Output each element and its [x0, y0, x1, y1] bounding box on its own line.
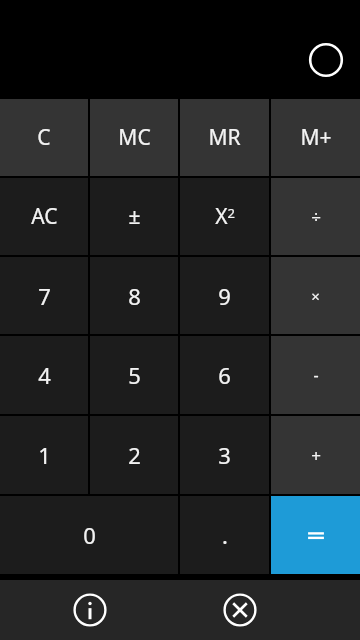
staticText: 9	[218, 281, 231, 311]
staticText: 4	[38, 360, 51, 390]
staticText: M+	[300, 123, 332, 152]
button[interactable]: ±	[90, 178, 178, 255]
staticText: MR	[208, 123, 241, 152]
button[interactable]: M+	[271, 99, 360, 176]
button[interactable]: Close	[180, 580, 300, 640]
button[interactable]: 8	[90, 257, 178, 334]
button[interactable]: 5	[90, 336, 178, 414]
button[interactable]: +	[271, 416, 360, 494]
button[interactable]: X2	[180, 178, 269, 255]
button[interactable]: MR	[180, 99, 269, 176]
button[interactable]: Info	[0, 580, 180, 640]
button[interactable]: 9	[180, 257, 269, 334]
staticText: 3	[218, 440, 231, 470]
button[interactable]: 7	[0, 257, 88, 334]
staticText: 0	[83, 520, 96, 550]
button[interactable]: -	[271, 336, 360, 414]
button[interactable]: C	[0, 99, 88, 176]
staticText: X2	[215, 202, 235, 231]
staticText: +	[311, 444, 321, 467]
staticText: 1	[38, 440, 51, 470]
button[interactable]: AC	[0, 178, 88, 255]
staticText: C	[37, 123, 51, 152]
button[interactable]: MC	[90, 99, 178, 176]
button[interactable]: 1	[0, 416, 88, 494]
button[interactable]: Clear entry	[308, 42, 344, 78]
staticText: MC	[118, 123, 151, 152]
staticText: ÷	[311, 205, 321, 228]
staticText: 2	[128, 440, 141, 470]
staticText: ±	[128, 202, 141, 231]
staticText: .	[222, 520, 228, 550]
staticText: AC	[31, 202, 58, 231]
button[interactable]: 2	[90, 416, 178, 494]
button[interactable]: Equals	[271, 496, 360, 574]
button[interactable]: 3	[180, 416, 269, 494]
staticText: 6	[218, 360, 231, 390]
staticText: 5	[128, 360, 141, 390]
staticText: -	[313, 364, 319, 386]
button[interactable]: 6	[180, 336, 269, 414]
button[interactable]: ×	[271, 257, 360, 334]
button[interactable]: 4	[0, 336, 88, 414]
staticText: 8	[128, 281, 141, 311]
button[interactable]: 0	[0, 496, 178, 574]
staticText: 7	[38, 281, 51, 311]
button[interactable]: ÷	[271, 178, 360, 255]
staticText: ×	[311, 286, 320, 306]
button[interactable]: .	[180, 496, 269, 574]
